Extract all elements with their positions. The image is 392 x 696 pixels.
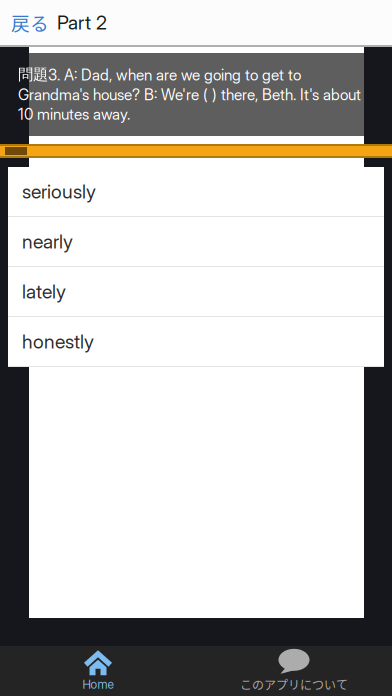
button[interactable]: nearly xyxy=(8,217,384,267)
button[interactable]: lately xyxy=(8,267,384,317)
button[interactable]: honestly xyxy=(8,317,384,367)
staticText: lately xyxy=(22,280,66,303)
staticText: honestly xyxy=(22,330,94,353)
staticText: このアプリについて xyxy=(240,676,348,693)
button[interactable]: このアプリについて xyxy=(196,646,392,696)
button[interactable]: Home xyxy=(0,646,196,696)
staticText: Home xyxy=(82,677,113,692)
staticText: nearly xyxy=(22,230,73,253)
staticText: 問題3. A: Dad, when are we going to get to… xyxy=(18,65,361,123)
staticText: 戻る xyxy=(11,9,49,36)
staticText: seriously xyxy=(22,180,96,203)
button[interactable]: seriously xyxy=(8,167,384,217)
button[interactable]: 戻る xyxy=(0,0,57,48)
staticText: Part 2 xyxy=(57,11,107,34)
